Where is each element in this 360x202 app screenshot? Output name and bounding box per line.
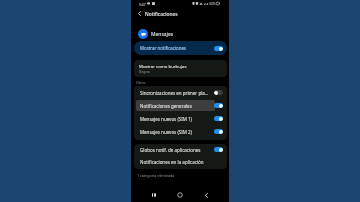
staticText: 1 categoría eliminada <box>137 173 175 178</box>
button[interactable]: Globos notif. de aplicaciones <box>134 144 227 156</box>
button[interactable]: Mostrar notificaciones <box>134 41 227 55</box>
button[interactable]: Atrás <box>200 189 212 201</box>
button[interactable]: Activado <box>214 103 223 108</box>
button[interactable]: Mensajes nuevos (SIM 1) <box>134 112 227 125</box>
button[interactable]: Sincronizaciones en primer pla… <box>134 86 227 99</box>
staticText: 30% <box>209 2 216 6</box>
staticText: 9:47 <box>139 2 146 6</box>
button[interactable]: Recientes <box>148 189 160 201</box>
staticText: Mostrar notificaciones <box>140 45 212 51</box>
button[interactable]: Mensajes <box>131 26 229 42</box>
staticText: Ninguna <box>139 70 150 74</box>
staticText: Notificaciones generales <box>140 103 212 109</box>
staticText: Notificaciones <box>145 11 178 18</box>
staticText: Mensajes nuevos (SIM 2) <box>140 129 212 135</box>
button[interactable]: Notificaciones en la aplicación <box>134 156 227 168</box>
staticText: Mensajes <box>151 31 174 38</box>
button[interactable]: Atrás <box>135 9 144 18</box>
staticText: Globos notif. de aplicaciones <box>140 147 212 153</box>
button[interactable]: Inicio <box>174 189 186 201</box>
button[interactable]: Mostrar como burbujas <box>134 60 227 77</box>
button[interactable]: Activado <box>214 129 223 134</box>
button[interactable]: Activado <box>214 116 223 121</box>
button[interactable]: Activado <box>214 46 223 51</box>
button[interactable]: Activado <box>214 147 223 152</box>
staticText: Mensajes nuevos (SIM 1) <box>140 116 212 122</box>
button[interactable]: Notificaciones generales <box>134 99 227 112</box>
staticText: Mostrar como burbujas <box>139 63 187 69</box>
button[interactable]: Mensajes nuevos (SIM 2) <box>134 125 227 138</box>
button[interactable]: Desactivado <box>214 90 223 95</box>
staticText: Otros <box>136 80 146 85</box>
staticText: Sincronizaciones en primer pla… <box>140 90 212 96</box>
staticText: Notificaciones en la aplicación <box>140 159 223 165</box>
